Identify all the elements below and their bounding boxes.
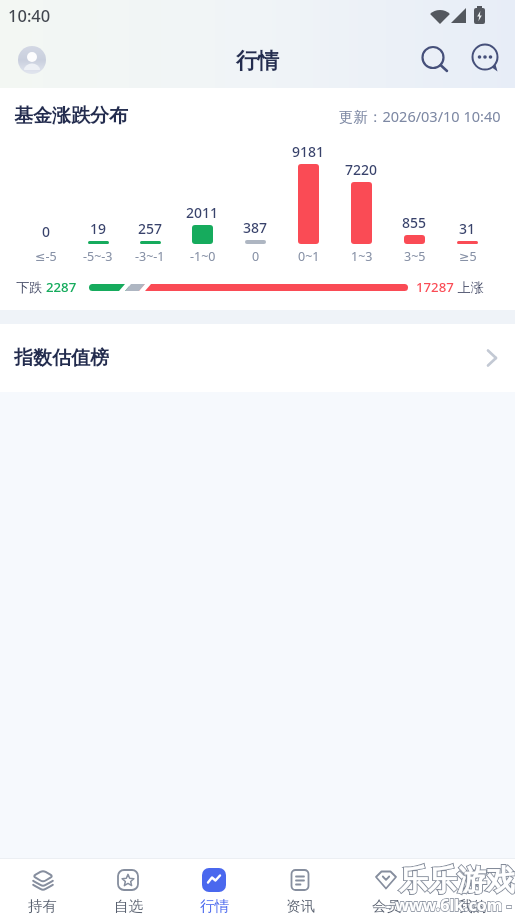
- staticText: 更新：2026/03/10 10:40: [339, 106, 501, 126]
- staticText: 2011: [186, 203, 219, 222]
- staticText: 0: [42, 222, 51, 241]
- staticText: 乐乐游戏: [399, 862, 515, 899]
- staticText: ≤-5: [35, 248, 57, 265]
- staticText: 9181: [292, 142, 325, 161]
- staticText: 387: [243, 218, 268, 237]
- staticText: 基金涨跌分布: [14, 104, 128, 128]
- button[interactable]: [419, 44, 451, 76]
- button[interactable]: 持有: [0, 858, 85, 921]
- staticText: 持有: [28, 897, 57, 915]
- staticText: 19: [90, 219, 107, 238]
- button[interactable]: 指数估值榜: [0, 324, 515, 392]
- staticText: 自选: [114, 897, 143, 915]
- staticText: 10:40: [8, 4, 51, 26]
- staticText: 指数估值榜: [14, 346, 109, 370]
- staticText: 257: [138, 219, 163, 238]
- staticText: 31: [459, 219, 476, 238]
- staticText: - www.6lk.com -: [386, 894, 512, 916]
- button[interactable]: 我的: [429, 858, 515, 921]
- staticText: 会员: [372, 897, 401, 915]
- staticText: - www.6lk.com -: [386, 894, 512, 916]
- button[interactable]: [470, 44, 502, 76]
- button[interactable]: 行情: [171, 858, 257, 921]
- button[interactable]: [18, 46, 46, 74]
- staticText: 行情: [200, 897, 229, 915]
- staticText: 上涨: [454, 278, 484, 296]
- button[interactable]: 自选: [85, 858, 171, 921]
- staticText: 我的: [458, 897, 487, 915]
- staticText: 3~5: [404, 248, 426, 265]
- staticText: 资讯: [286, 897, 315, 915]
- staticText: -5~-3: [83, 248, 113, 265]
- button[interactable]: 资讯: [257, 858, 343, 921]
- button[interactable]: 会员: [343, 858, 429, 921]
- staticText: -1~0: [190, 248, 216, 265]
- staticText: 行情: [236, 47, 279, 74]
- staticText: ≥5: [459, 248, 477, 265]
- staticText: 乐乐游戏: [399, 862, 515, 899]
- staticText: 0: [252, 248, 260, 265]
- staticText: 7220: [345, 160, 378, 179]
- staticText: 0~1: [298, 248, 320, 265]
- staticText: 855: [402, 213, 427, 232]
- staticText: 下跌: [16, 278, 46, 296]
- staticText: 17287: [416, 278, 454, 296]
- staticText: -3~-1: [135, 248, 165, 265]
- staticText: 1~3: [351, 248, 373, 265]
- staticText: 2287: [46, 278, 77, 296]
